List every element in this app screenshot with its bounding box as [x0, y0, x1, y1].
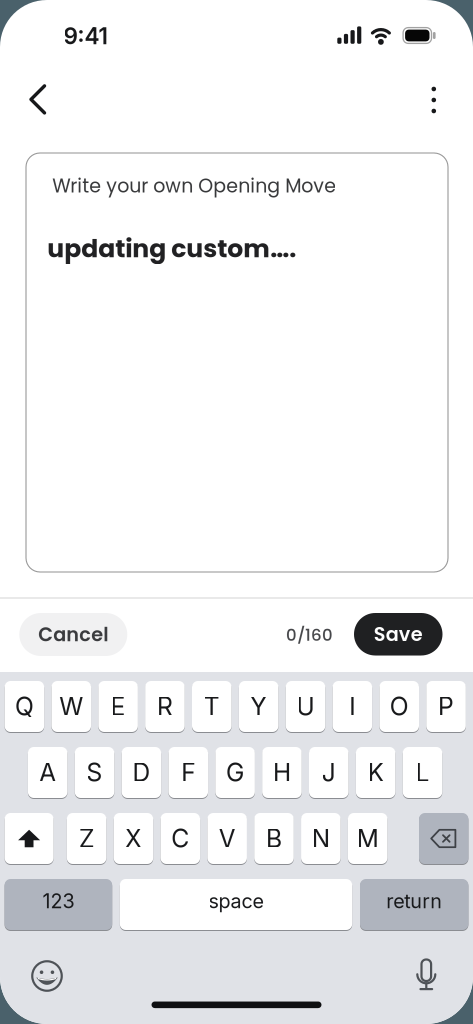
button[interactable]: Save: [354, 613, 442, 655]
button[interactable]: space: [120, 879, 352, 930]
button[interactable]: [16, 77, 60, 121]
staticText: H: [273, 758, 291, 787]
button[interactable]: [25, 954, 69, 998]
staticText: O: [390, 692, 409, 721]
staticText: Cancel: [38, 621, 108, 648]
button[interactable]: M: [348, 813, 387, 864]
button[interactable]: I: [333, 681, 372, 732]
button[interactable]: [5, 813, 54, 864]
button[interactable]: O: [379, 681, 419, 732]
staticText: W: [59, 692, 83, 721]
staticText: I: [349, 692, 355, 721]
staticText: 0/160: [286, 623, 333, 646]
staticText: 123: [42, 889, 74, 913]
button[interactable]: [26, 153, 448, 572]
button[interactable]: 123: [5, 879, 112, 930]
staticText: space: [208, 889, 263, 913]
button[interactable]: Y: [239, 681, 278, 732]
button[interactable]: [404, 953, 448, 997]
button[interactable]: H: [262, 747, 302, 798]
staticText: E: [111, 692, 126, 721]
button[interactable]: J: [309, 747, 349, 798]
staticText: updating custom….: [47, 231, 296, 266]
staticText: Write your own Opening Move: [52, 172, 336, 199]
staticText: M: [357, 824, 379, 853]
staticText: D: [132, 758, 150, 787]
button[interactable]: Z: [67, 813, 106, 864]
button[interactable]: R: [145, 681, 185, 732]
button[interactable]: G: [215, 747, 255, 798]
staticText: return: [386, 889, 442, 913]
staticText: X: [125, 824, 142, 853]
staticText: G: [226, 758, 244, 787]
button[interactable]: return: [360, 879, 468, 930]
staticText: P: [438, 692, 454, 721]
button[interactable]: P: [426, 681, 466, 732]
button[interactable]: V: [207, 813, 247, 864]
button[interactable]: Cancel: [19, 613, 127, 656]
button[interactable]: D: [122, 747, 161, 798]
staticText: F: [181, 758, 195, 787]
staticText: R: [157, 692, 173, 721]
button[interactable]: C: [160, 813, 200, 864]
button[interactable]: X: [114, 813, 153, 864]
staticText: J: [322, 758, 336, 787]
staticText: C: [171, 824, 189, 853]
staticText: V: [219, 824, 236, 853]
staticText: 9:41: [63, 22, 107, 50]
button[interactable]: [412, 78, 456, 122]
staticText: Y: [250, 692, 267, 721]
button[interactable]: W: [51, 681, 91, 732]
staticText: N: [312, 824, 330, 853]
staticText: A: [39, 758, 56, 787]
button[interactable]: K: [356, 747, 395, 798]
staticText: T: [204, 692, 220, 721]
staticText: S: [86, 758, 102, 787]
button[interactable]: B: [254, 813, 294, 864]
staticText: U: [296, 692, 314, 721]
button[interactable]: T: [192, 681, 232, 732]
staticText: Z: [79, 824, 94, 853]
staticText: K: [368, 758, 384, 787]
button[interactable]: [419, 813, 468, 864]
staticText: Q: [15, 692, 34, 721]
staticText: B: [266, 824, 282, 853]
button[interactable]: E: [98, 681, 138, 732]
button[interactable]: F: [168, 747, 208, 798]
button[interactable]: N: [301, 813, 341, 864]
button[interactable]: S: [75, 747, 114, 798]
staticText: L: [415, 758, 429, 787]
button[interactable]: A: [28, 747, 67, 798]
staticText: Save: [374, 621, 423, 648]
button[interactable]: U: [286, 681, 325, 732]
button[interactable]: L: [403, 747, 442, 798]
button[interactable]: Q: [5, 681, 44, 732]
